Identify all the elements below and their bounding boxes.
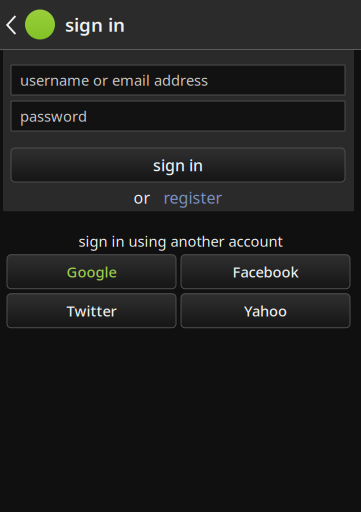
button[interactable]: Facebook bbox=[181, 255, 350, 289]
staticText: Facebook bbox=[232, 262, 298, 281]
button[interactable]: register bbox=[163, 187, 222, 208]
button[interactable]: sign in bbox=[11, 148, 345, 182]
staticText: password bbox=[20, 106, 87, 126]
staticText: register bbox=[163, 187, 222, 208]
button[interactable]: Back bbox=[0, 0, 25, 49]
button[interactable]: Twitter bbox=[7, 294, 176, 328]
staticText: Yahoo bbox=[244, 301, 287, 320]
staticText: username or email address bbox=[20, 70, 208, 90]
staticText: Google bbox=[66, 262, 116, 281]
staticText: or bbox=[133, 187, 150, 208]
staticText: sign in bbox=[153, 154, 203, 176]
staticText: sign in using another account bbox=[78, 231, 282, 251]
button[interactable]: Yahoo bbox=[181, 294, 350, 328]
staticText: Twitter bbox=[66, 301, 116, 320]
button[interactable]: Google bbox=[7, 255, 176, 289]
staticText: sign in bbox=[65, 12, 125, 37]
